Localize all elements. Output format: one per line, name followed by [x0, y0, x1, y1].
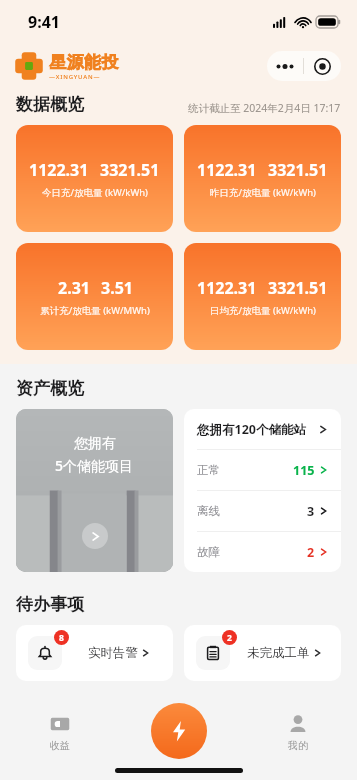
staticText: 1122.31: [29, 159, 89, 181]
staticText: 3: [307, 503, 315, 520]
staticText: 日均充/放电量 (kW/kWh): [210, 304, 316, 317]
button[interactable]: 2: [184, 625, 341, 681]
staticText: 3321.51: [268, 277, 328, 299]
staticText: 故障: [197, 545, 220, 559]
staticText: 3321.51: [268, 159, 328, 181]
staticText: 1122.31: [197, 277, 257, 299]
staticText: 实时告警: [88, 645, 138, 661]
other: More: [267, 51, 303, 81]
staticText: 9:41: [28, 11, 60, 33]
staticText: 昨日充/放电量 (kW/kWh): [210, 186, 316, 199]
staticText: 2.31: [58, 277, 90, 299]
staticText: 2: [227, 632, 232, 644]
staticText: 正常: [197, 463, 220, 477]
staticText: 3.51: [101, 277, 133, 299]
button[interactable]: Charge: [151, 703, 207, 759]
button[interactable]: More: [267, 51, 341, 81]
staticText: 您拥有: [74, 435, 116, 453]
staticText: 收益: [50, 739, 70, 752]
staticText: 今日充/放电量 (kW/kWh): [42, 186, 148, 199]
staticText: 资产概览: [16, 378, 84, 399]
button[interactable]: 正常: [184, 450, 341, 490]
staticText: 我的: [288, 739, 308, 752]
button[interactable]: 2.31: [16, 243, 173, 350]
button[interactable]: 1122.31: [184, 243, 341, 350]
button[interactable]: 我的: [238, 698, 357, 766]
staticText: 2: [307, 544, 315, 561]
button[interactable]: 1122.31: [16, 125, 173, 232]
staticText: 数据概览: [16, 94, 84, 115]
button[interactable]: 8: [16, 625, 173, 681]
button[interactable]: View projects: [82, 523, 108, 549]
staticText: 待办事项: [16, 594, 84, 615]
staticText: 您拥有120个储能站: [197, 421, 306, 438]
button[interactable]: 收益: [0, 698, 119, 766]
button[interactable]: 1122.31: [184, 125, 341, 232]
staticText: 1122.31: [197, 159, 257, 181]
button[interactable]: 故障: [184, 532, 341, 572]
other: Target: [304, 51, 341, 81]
staticText: 115: [293, 462, 315, 479]
staticText: 未完成工单: [247, 645, 310, 661]
staticText: 星源能投: [49, 52, 119, 73]
button[interactable]: 离线: [184, 491, 341, 531]
staticText: 累计充/放电量 (kW/MWh): [40, 304, 150, 317]
staticText: 统计截止至 2024年2月4日 17:17: [188, 101, 341, 115]
staticText: 3321.51: [100, 159, 160, 181]
staticText: —XINGYUAN—: [49, 73, 101, 81]
staticText: 8: [59, 632, 64, 644]
staticText: 离线: [197, 504, 220, 518]
button[interactable]: 您拥有120个储能站: [184, 409, 341, 449]
button[interactable]: 您拥有: [16, 409, 173, 572]
staticText: 5个储能项目: [55, 456, 134, 475]
